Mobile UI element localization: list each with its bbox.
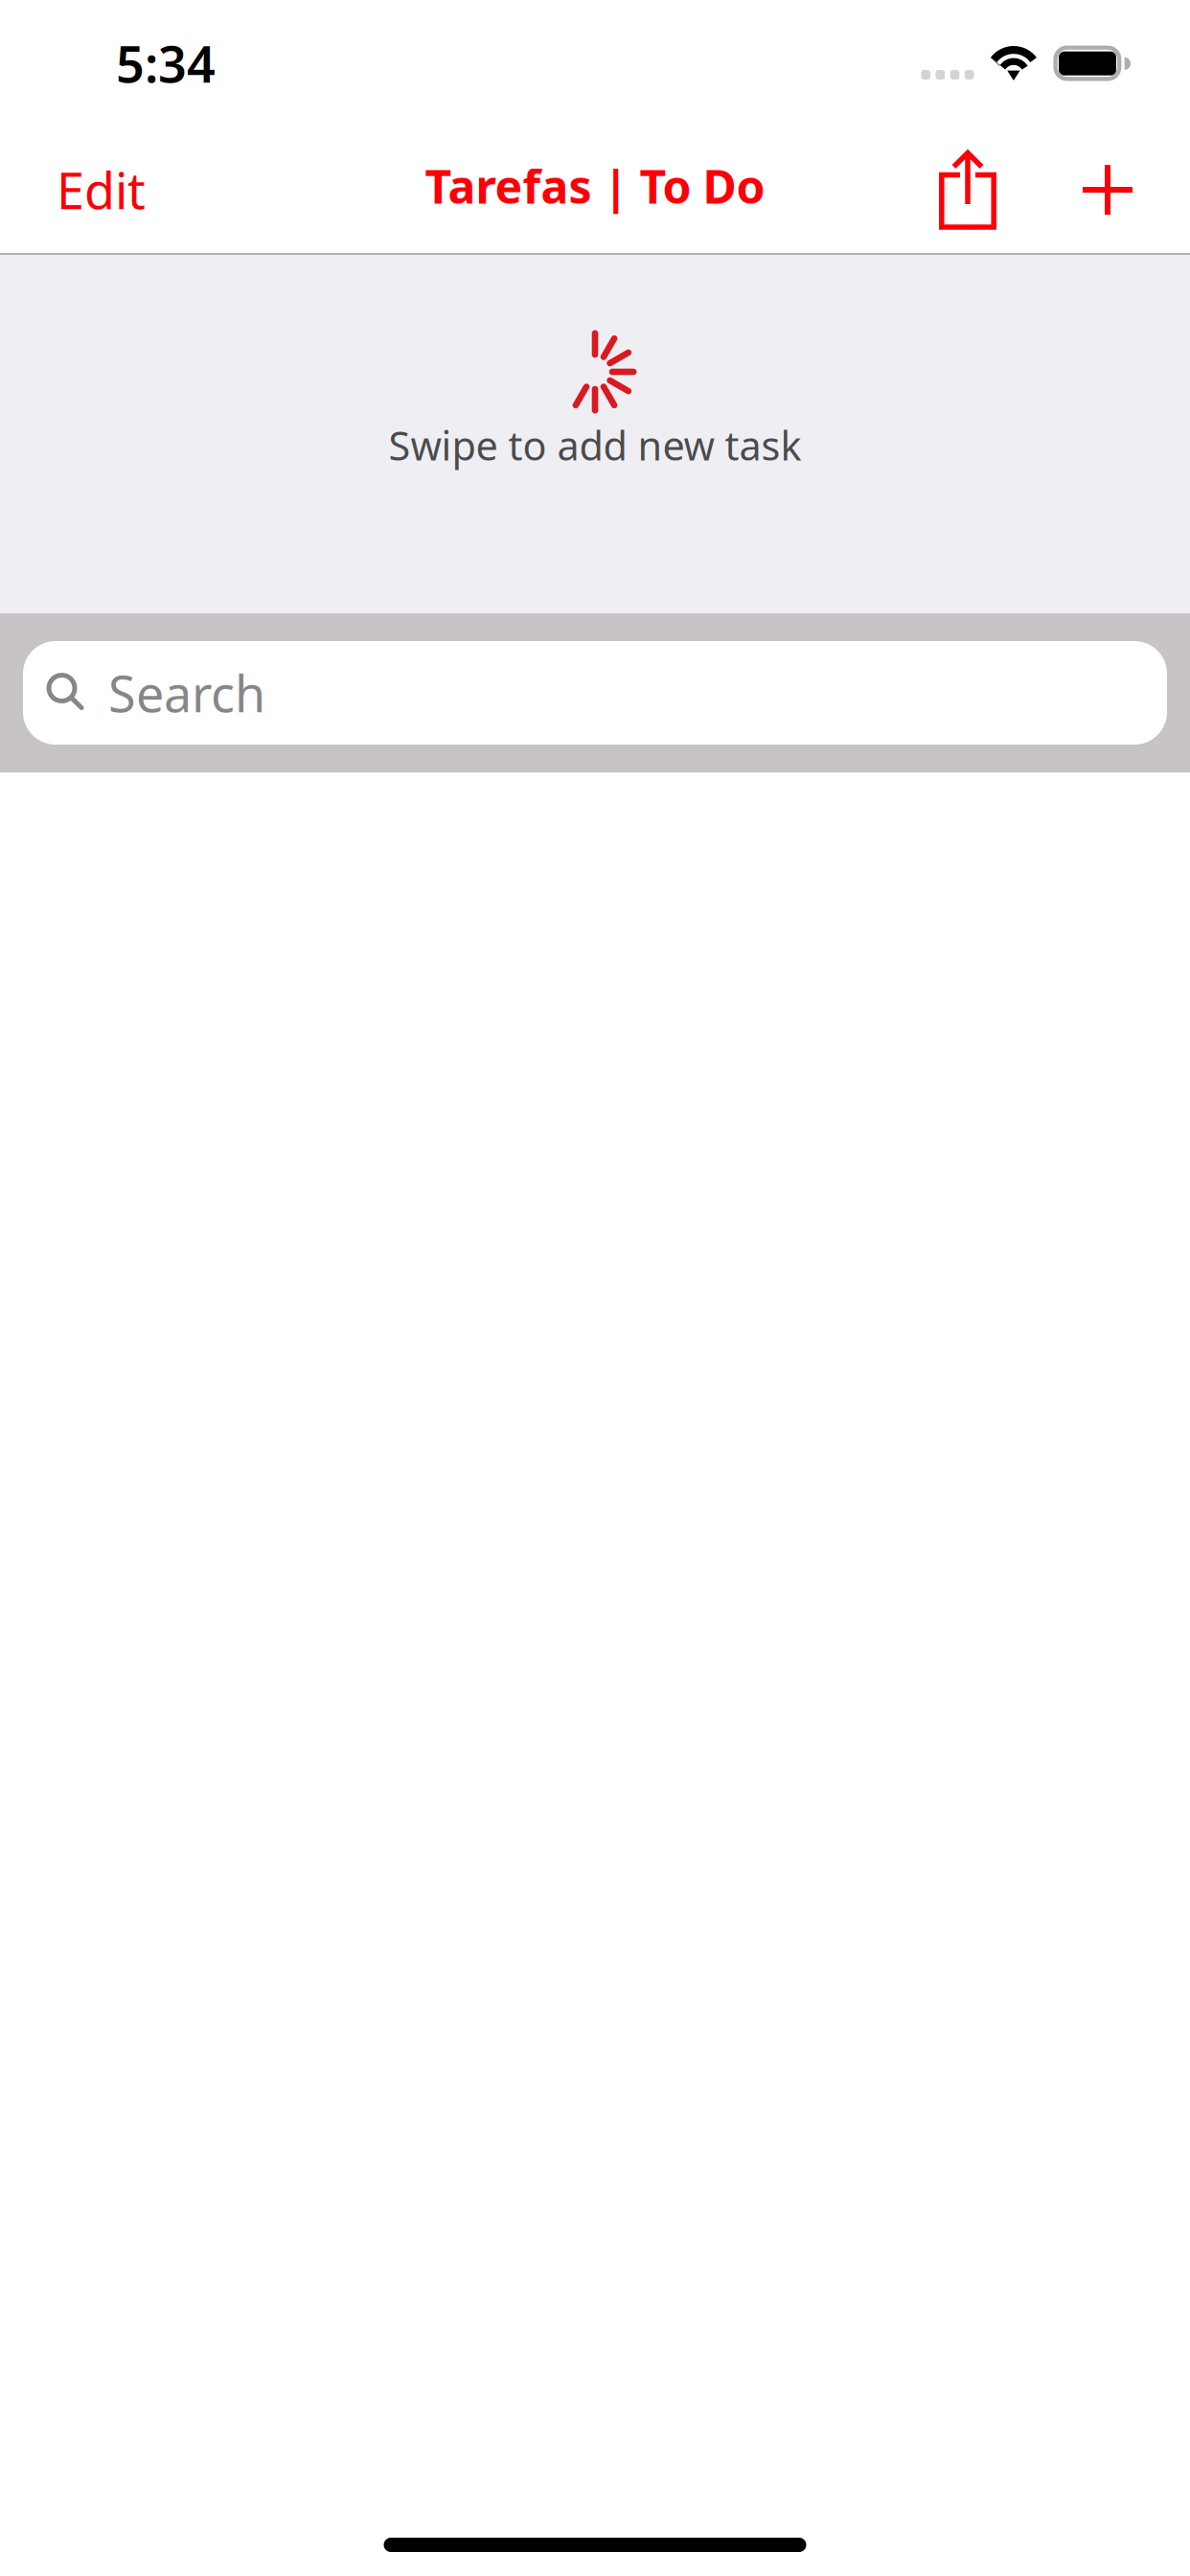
- staticText: Search: [108, 660, 265, 726]
- staticText: Edit: [57, 157, 146, 223]
- staticText: Tarefas | To Do: [425, 155, 765, 216]
- button[interactable]: Edit: [45, 136, 157, 244]
- staticText: 5:34: [116, 30, 216, 96]
- button[interactable]: Add task: [1065, 138, 1150, 241]
- button[interactable]: Search: [23, 641, 1167, 745]
- button[interactable]: Share: [922, 138, 1014, 241]
- staticText: Swipe to add new task: [389, 419, 801, 471]
